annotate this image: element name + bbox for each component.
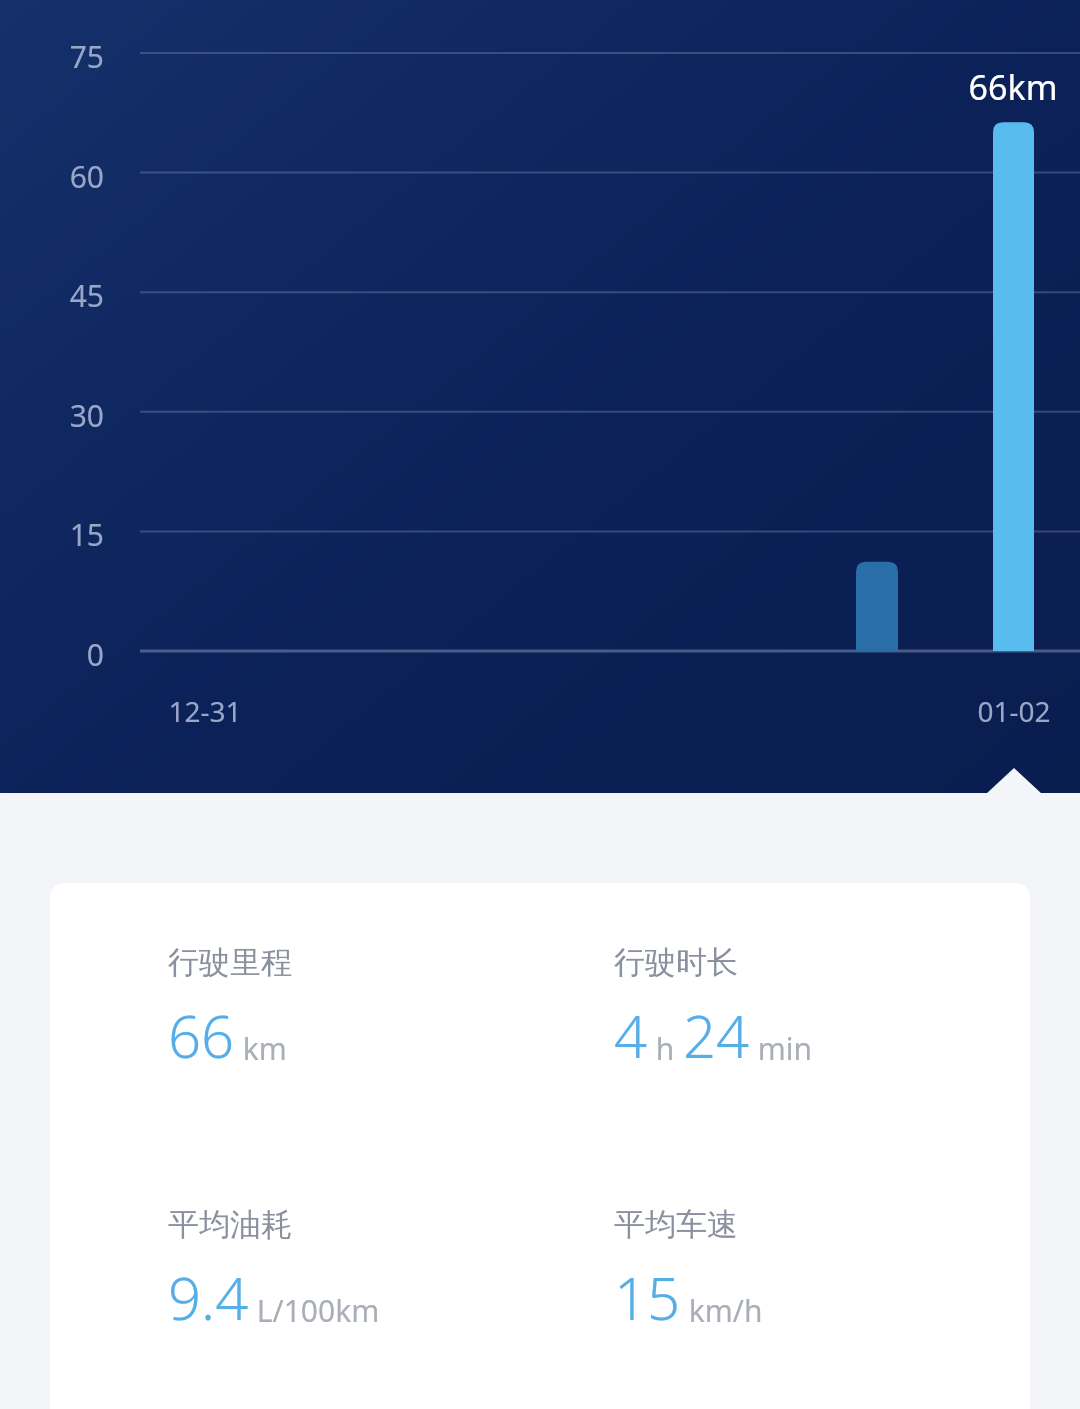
staticText: 66 <box>168 996 235 1075</box>
staticText: 0 <box>0 634 104 675</box>
button[interactable]: 平均车速 <box>614 1205 1030 1337</box>
staticText: 行驶时长 <box>614 943 738 982</box>
button[interactable]: 平均油耗 <box>168 1205 540 1337</box>
staticText: 15 <box>614 1258 681 1337</box>
button[interactable]: 行驶时长 <box>614 943 1030 1075</box>
other: Selected day indicator <box>986 766 1042 794</box>
staticText: 15 <box>0 514 104 555</box>
staticText: 24 <box>683 996 750 1075</box>
staticText: 75 <box>0 36 104 77</box>
staticText: 60 <box>0 156 104 197</box>
staticText: km/h <box>681 1290 763 1331</box>
staticText: 4 <box>614 996 648 1075</box>
staticText: 平均油耗 <box>168 1205 292 1244</box>
staticText: min <box>750 1028 813 1069</box>
staticText: 45 <box>0 275 104 316</box>
staticText: h <box>648 1028 683 1069</box>
staticText: 01-02 <box>944 692 1080 730</box>
staticText: 30 <box>0 395 104 436</box>
staticText: 平均车速 <box>614 1205 738 1244</box>
staticText: km <box>235 1028 287 1069</box>
staticText: L/100km <box>249 1290 380 1331</box>
staticText: 9.4 <box>168 1258 249 1337</box>
staticText: 12-31 <box>135 692 275 730</box>
staticText: 66km <box>940 64 1080 110</box>
button[interactable]: 行驶里程 <box>50 883 1030 1409</box>
button[interactable]: 行驶里程 <box>168 943 540 1075</box>
staticText: 行驶里程 <box>168 943 292 982</box>
